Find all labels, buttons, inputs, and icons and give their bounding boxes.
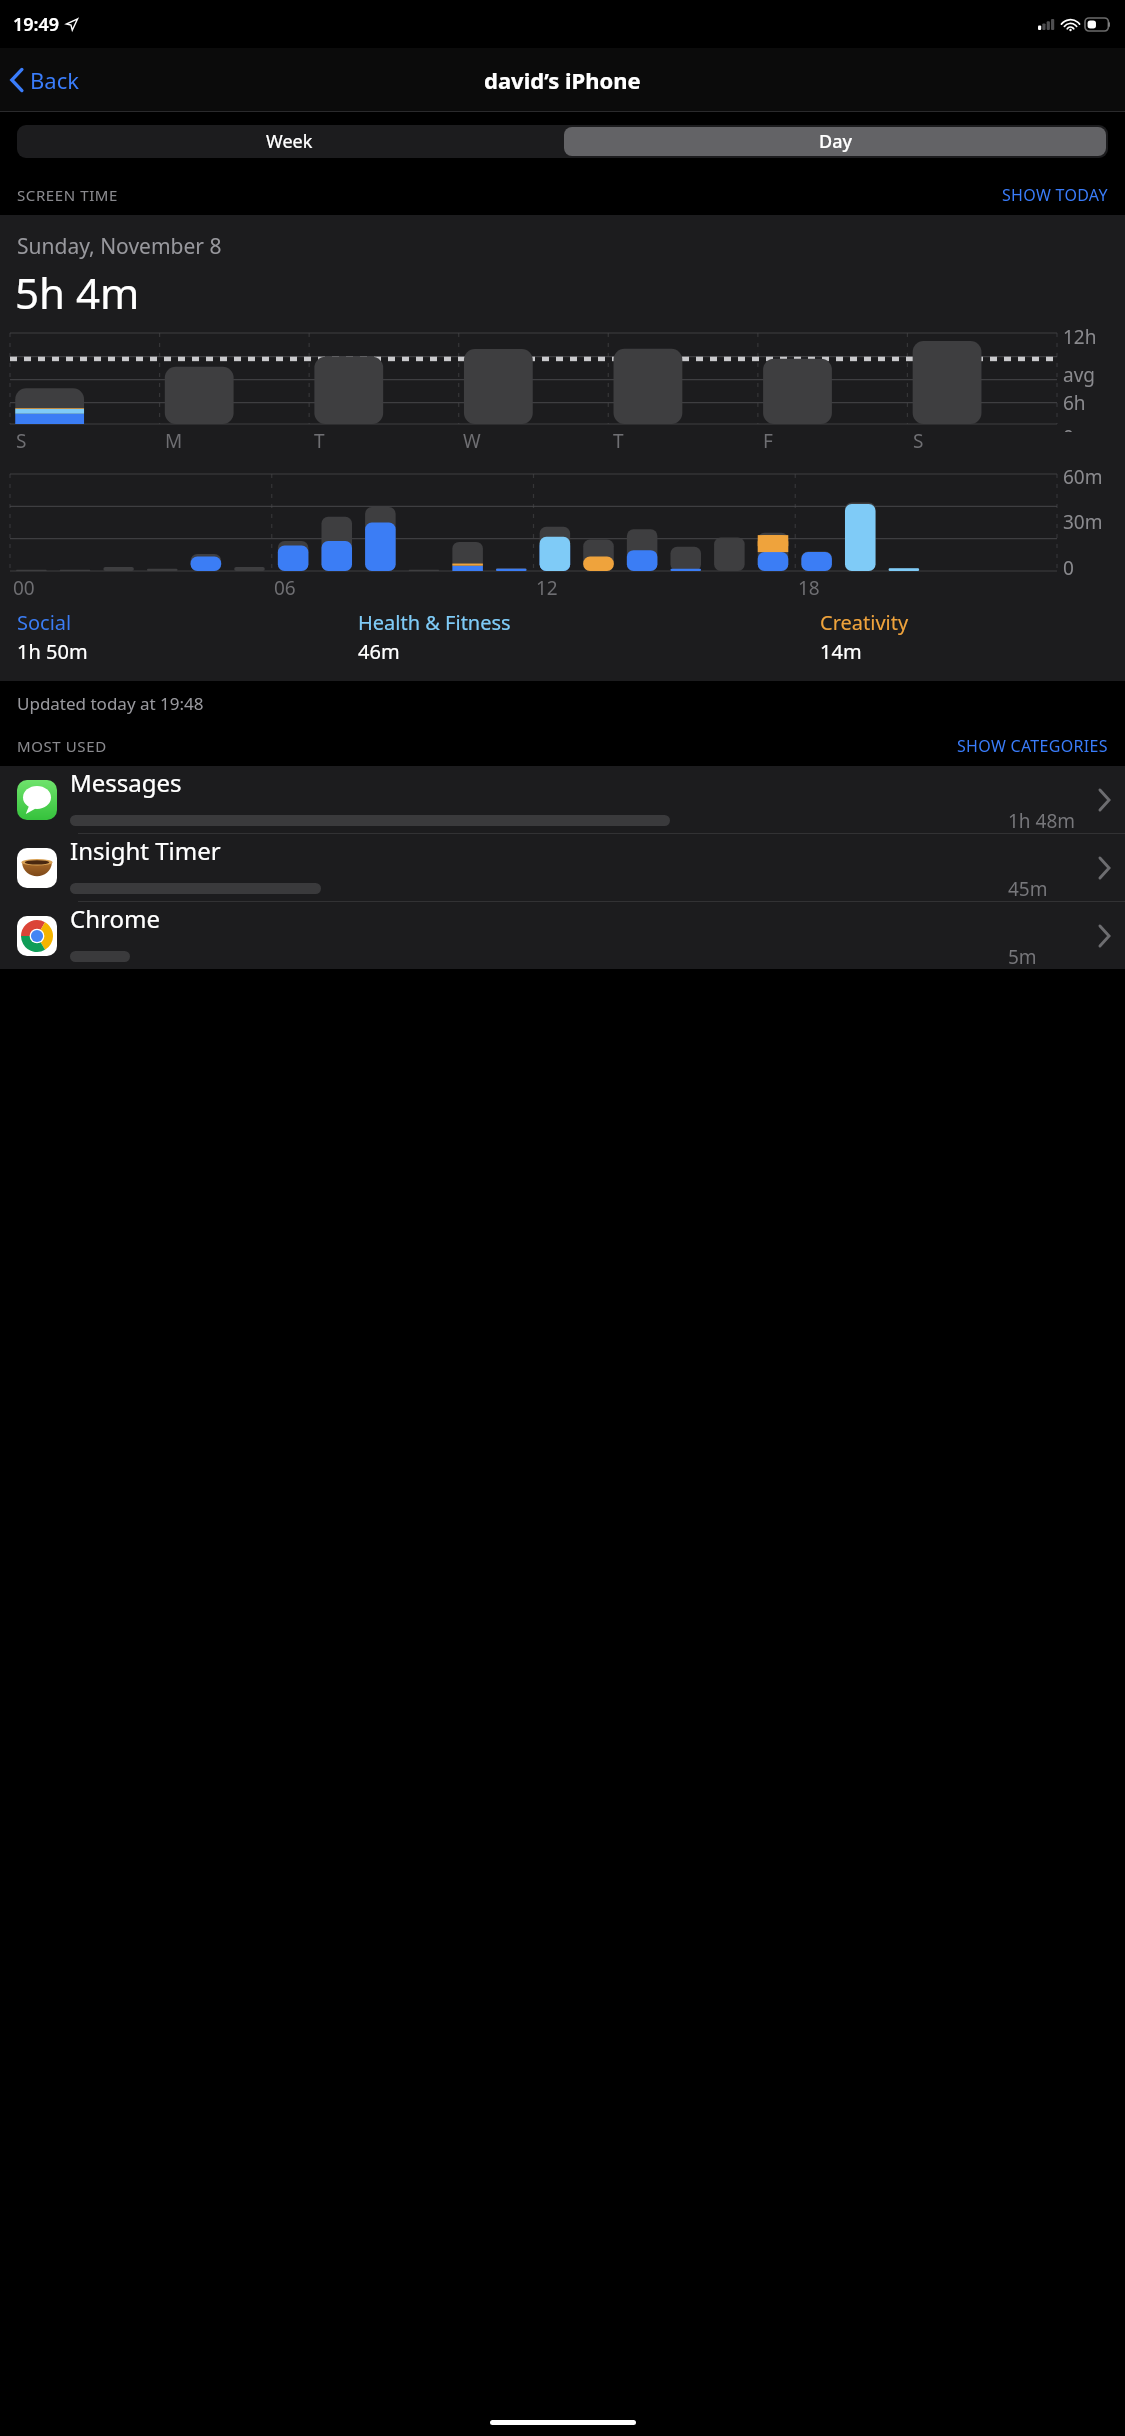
staticText: 6h [1063,390,1086,416]
button[interactable]: Insight Timer [0,834,1125,901]
staticText: Day [819,129,852,154]
button[interactable]: Chrome [0,902,1125,969]
staticText: 5h 4m [15,264,140,321]
staticText: 00 [13,575,35,601]
button[interactable]: Messages [0,766,1125,833]
staticText: 12 [536,575,558,601]
staticText: SHOW CATEGORIES [957,735,1108,757]
staticText: S [16,428,27,454]
staticText: avg [1063,362,1095,388]
staticText: 12h [1063,324,1097,350]
staticText: 0 [1063,555,1074,581]
button[interactable]: SHOW CATEGORIES [957,735,1108,757]
staticText: T [314,428,325,454]
staticText: W [463,428,481,454]
staticText: SCREEN TIME [17,185,118,205]
staticText: 30m [1063,509,1103,535]
staticText: SHOW TODAY [1002,184,1108,206]
staticText: 60m [1063,464,1103,490]
staticText: S [913,428,924,454]
staticText: Chrome [70,902,160,935]
other: Open Insight Timer details [1098,856,1111,880]
staticText: 06 [274,575,296,601]
staticText: 14m [820,638,862,665]
staticText: Week [266,129,313,154]
staticText: 46m [358,638,400,665]
staticText: F [763,428,773,454]
staticText: Health & Fitness [358,609,511,636]
other: Open Messages details [1098,788,1111,812]
button[interactable]: Back [0,59,91,101]
staticText: Sunday, November 8 [17,232,222,261]
button[interactable]: Week [17,125,562,158]
other: Open Chrome details [1098,924,1111,948]
staticText: T [613,428,624,454]
staticText: Creativity [820,609,909,636]
staticText: 18 [798,575,820,601]
staticText: david’s iPhone [484,65,641,95]
staticText: MOST USED [17,736,107,756]
button[interactable]: Day [564,127,1106,156]
staticText: 45m [1008,876,1094,901]
staticText: Social [17,609,72,636]
staticText: M [165,428,183,454]
staticText: Back [30,65,79,95]
staticText: Messages [70,766,182,799]
staticText: Insight Timer [70,834,221,867]
staticText: 0 [1063,424,1074,432]
staticText: Updated today at 19:48 [17,692,204,715]
staticText: 1h 48m [1008,808,1094,833]
staticText: 1h 50m [17,638,88,665]
staticText: 19:49 [13,12,60,37]
button[interactable]: SHOW TODAY [1002,184,1108,206]
staticText: 5m [1008,944,1094,969]
